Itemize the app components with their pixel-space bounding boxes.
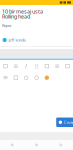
staticText: 10 bir mesaj usta — [2, 8, 43, 15]
staticText: Jeff konda — [8, 37, 25, 43]
button[interactable]: Align — [53, 63, 61, 70]
button[interactable]: Italic — [22, 63, 30, 70]
button[interactable]: Underline — [32, 63, 40, 70]
button[interactable]: Home — [24, 144, 49, 146]
button[interactable]: Reply — [56, 117, 73, 127]
button[interactable]: Font — [1, 63, 9, 70]
staticText: Cevapla — [63, 120, 73, 125]
button[interactable]: Numbered list — [12, 74, 20, 81]
button[interactable]: Bold — [12, 63, 20, 70]
staticText: Rolling head — [2, 13, 30, 20]
button[interactable]: Back — [0, 144, 24, 146]
button[interactable]: Text colour — [43, 74, 51, 81]
button[interactable]: Indent — [63, 63, 71, 70]
button[interactable]: Undo — [22, 74, 30, 81]
button[interactable]: Jeff konda — [0, 36, 73, 44]
button[interactable]: Strikethrough — [43, 63, 51, 70]
button[interactable]: Recents — [49, 144, 73, 146]
staticText: Rapor — [2, 23, 12, 28]
button[interactable]: Bulleted list — [1, 74, 9, 81]
button[interactable]: Redo — [32, 74, 40, 81]
